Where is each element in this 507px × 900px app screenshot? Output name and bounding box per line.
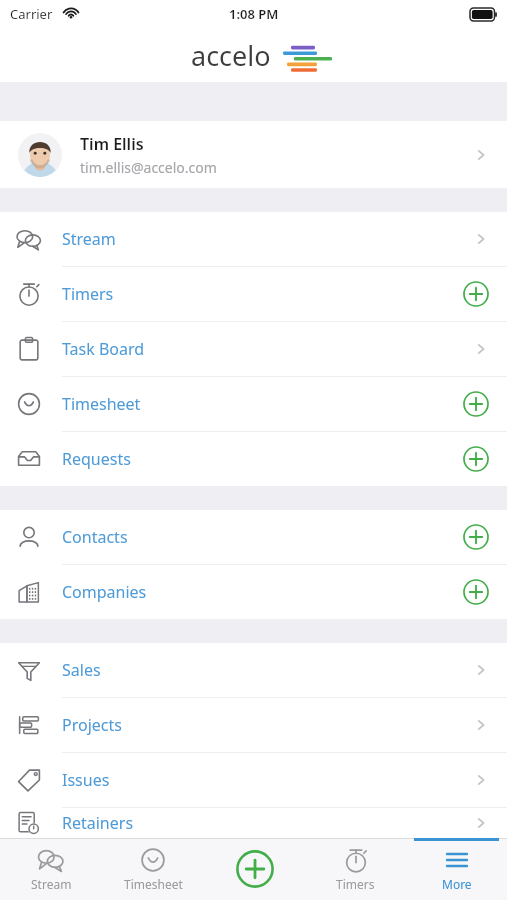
button[interactable]: Create (204, 838, 305, 900)
button[interactable]: Timers (305, 838, 406, 900)
staticText: Task Board (62, 338, 473, 360)
button[interactable]: Add Timers (463, 281, 489, 307)
button[interactable]: Companies (0, 565, 507, 619)
button[interactable]: More (406, 838, 507, 900)
button[interactable]: Add Companies (463, 579, 489, 605)
button[interactable]: Issues (0, 753, 507, 807)
button[interactable]: Projects (0, 698, 507, 752)
staticText: Stream (31, 876, 72, 892)
staticText: Projects (62, 714, 473, 736)
staticText: Timers (336, 876, 375, 892)
button[interactable]: Add Timesheet (463, 391, 489, 417)
staticText: 1:08 PM (229, 5, 279, 23)
staticText: Retainers (62, 812, 473, 834)
button[interactable]: Requests (0, 432, 507, 486)
staticText: Sales (62, 659, 473, 681)
button[interactable]: Timesheet (102, 838, 204, 900)
staticText: Timesheet (62, 393, 463, 415)
button[interactable]: Contacts (0, 510, 507, 564)
staticText: Tim Ellis (80, 133, 144, 155)
staticText: Requests (62, 448, 463, 470)
button[interactable]: Retainers (0, 808, 507, 838)
staticText: More (442, 876, 472, 892)
staticText: Timers (62, 283, 463, 305)
staticText: tim.ellis@accelo.com (80, 158, 217, 177)
button[interactable]: Add Contacts (463, 524, 489, 550)
button[interactable]: Sales (0, 643, 507, 697)
staticText: Carrier (10, 5, 53, 23)
staticText: accelo (191, 37, 271, 74)
staticText: Issues (62, 769, 473, 791)
staticText: Companies (62, 581, 463, 603)
staticText: Timesheet (124, 876, 183, 892)
staticText: Stream (62, 228, 473, 250)
button[interactable]: Timers (0, 267, 507, 321)
button[interactable]: Task Board (0, 322, 507, 376)
button[interactable]: Tim Ellis (0, 121, 507, 188)
staticText: Contacts (62, 526, 463, 548)
button[interactable]: Timesheet (0, 377, 507, 431)
button[interactable]: Stream (0, 838, 102, 900)
button[interactable]: Add Requests (463, 446, 489, 472)
button[interactable]: Stream (0, 212, 507, 266)
